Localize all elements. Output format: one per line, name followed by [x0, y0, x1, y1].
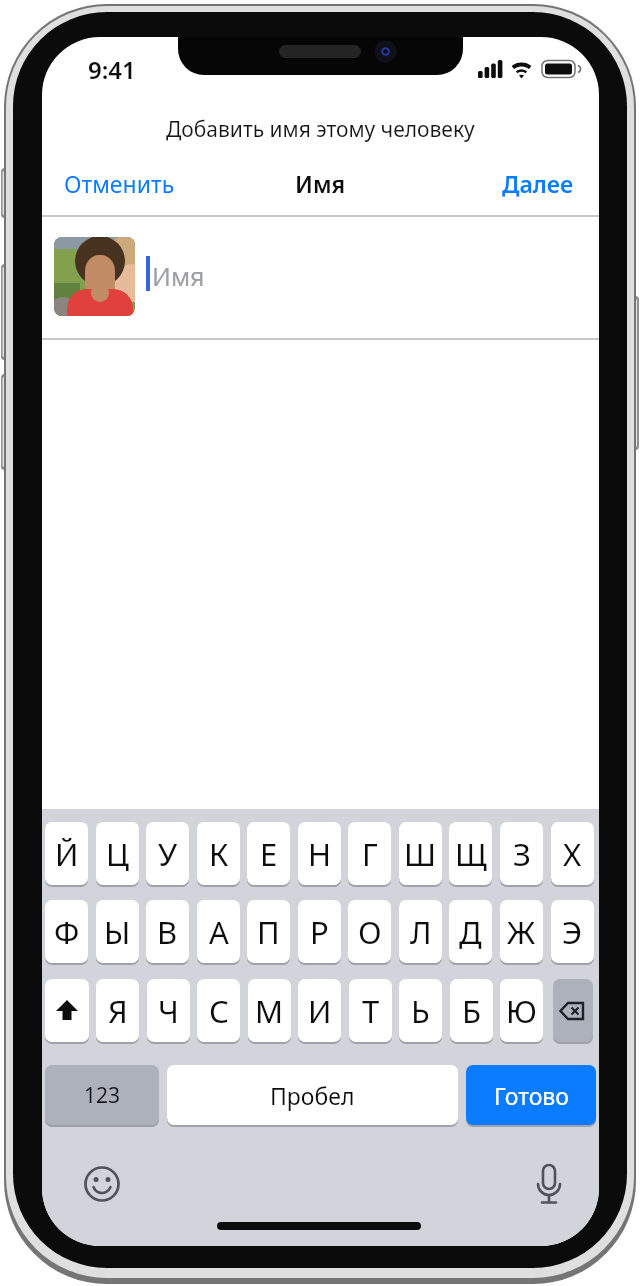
staticText: Имя: [152, 259, 205, 293]
button[interactable]: Ь: [399, 979, 442, 1042]
staticText: Ы: [104, 911, 131, 953]
button[interactable]: Ы: [96, 900, 139, 963]
button[interactable]: Ф: [45, 900, 88, 963]
staticText: Х: [563, 833, 582, 875]
button[interactable]: Пробел: [167, 1065, 458, 1125]
staticText: Далее: [502, 168, 574, 199]
button[interactable]: С: [197, 979, 240, 1042]
staticText: И: [308, 990, 332, 1032]
button[interactable]: Д: [449, 900, 492, 963]
button[interactable]: [80, 1162, 124, 1206]
button[interactable]: З: [500, 822, 543, 885]
button[interactable]: Ш: [399, 822, 442, 885]
staticText: Р: [310, 911, 329, 953]
staticText: Ш: [404, 833, 437, 875]
button[interactable]: Щ: [449, 822, 492, 885]
staticText: Е: [260, 833, 278, 875]
button[interactable]: Г: [348, 822, 391, 885]
staticText: Г: [362, 833, 378, 875]
button[interactable]: Отменить: [64, 168, 175, 199]
button[interactable]: Л: [399, 900, 442, 963]
staticText: Пробел: [270, 1080, 355, 1111]
button[interactable]: Н: [298, 822, 341, 885]
button[interactable]: Е: [247, 822, 290, 885]
staticText: Д: [459, 911, 482, 953]
button[interactable]: О: [348, 900, 391, 963]
staticText: Т: [362, 990, 380, 1032]
staticText: 9:41: [88, 53, 136, 81]
staticText: Ь: [411, 990, 430, 1032]
staticText: З: [513, 833, 531, 875]
button[interactable]: П: [247, 900, 290, 963]
staticText: Ф: [54, 911, 80, 953]
staticText: Н: [308, 833, 332, 875]
staticText: Отменить: [64, 168, 175, 199]
button[interactable]: Р: [298, 900, 341, 963]
button[interactable]: И: [298, 979, 341, 1042]
staticText: У: [158, 833, 178, 875]
button[interactable]: Ж: [500, 900, 543, 963]
staticText: Щ: [455, 833, 487, 875]
button[interactable]: Готово: [466, 1065, 596, 1125]
staticText: Ж: [507, 911, 536, 953]
staticText: О: [358, 911, 382, 953]
button[interactable]: В: [146, 900, 189, 963]
button[interactable]: Х: [551, 822, 594, 885]
button[interactable]: К: [197, 822, 240, 885]
staticText: Й: [55, 833, 79, 875]
staticText: Я: [108, 990, 128, 1032]
button[interactable]: [527, 1162, 571, 1206]
button[interactable]: [553, 979, 593, 1042]
button[interactable]: М: [248, 979, 291, 1042]
button[interactable]: 123: [45, 1065, 159, 1125]
button[interactable]: Б: [450, 979, 493, 1042]
button[interactable]: Э: [551, 900, 594, 963]
button[interactable]: Я: [96, 979, 139, 1042]
button[interactable]: Ч: [147, 979, 190, 1042]
button[interactable]: У: [146, 822, 189, 885]
staticText: Готово: [494, 1080, 569, 1111]
staticText: М: [255, 990, 284, 1032]
staticText: Ч: [158, 990, 179, 1032]
button[interactable]: Имя: [152, 259, 205, 293]
staticText: Б: [462, 990, 482, 1032]
staticText: Добавить имя этому человеку: [166, 115, 475, 144]
button[interactable]: А: [197, 900, 240, 963]
button[interactable]: Й: [45, 822, 88, 885]
staticText: Э: [562, 911, 583, 953]
staticText: П: [257, 911, 280, 953]
staticText: Ю: [506, 990, 537, 1032]
staticText: Ц: [106, 833, 129, 875]
staticText: Л: [410, 911, 432, 953]
button[interactable]: [54, 237, 135, 316]
button[interactable]: [45, 979, 89, 1042]
staticText: С: [209, 990, 229, 1032]
staticText: А: [209, 911, 229, 953]
staticText: К: [209, 833, 229, 875]
button[interactable]: Далее: [502, 168, 574, 199]
button[interactable]: Ц: [96, 822, 139, 885]
button[interactable]: Т: [349, 979, 392, 1042]
button[interactable]: Ю: [500, 979, 543, 1042]
staticText: 123: [84, 1081, 121, 1110]
staticText: Имя: [295, 168, 346, 199]
staticText: В: [157, 911, 178, 953]
